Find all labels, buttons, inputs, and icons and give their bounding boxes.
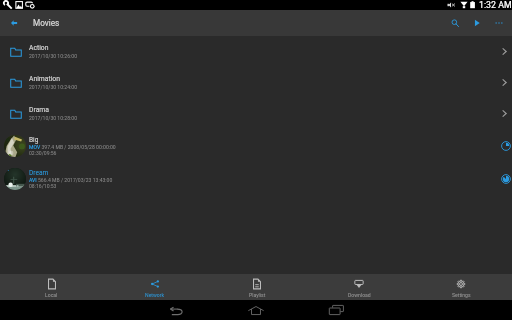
staticText: 2017/10/30 10:26:00 <box>29 53 78 59</box>
staticText: Network <box>145 292 165 298</box>
staticText: Movies <box>33 18 60 28</box>
staticText: AVI 566.4 MB / 2017/03/23 13:43:00 <box>29 177 113 183</box>
staticText: Animation <box>29 75 61 83</box>
button[interactable]: Search <box>444 10 466 36</box>
button[interactable]: More options <box>488 10 510 36</box>
button[interactable]: Animation <box>0 67 512 98</box>
staticText: 2017/10/30 10:28:00 <box>29 115 78 121</box>
staticText: Local <box>45 292 58 298</box>
button[interactable]: Home <box>236 300 276 320</box>
button[interactable]: Network <box>103 274 206 300</box>
button[interactable]: Settings <box>410 274 512 300</box>
button[interactable]: Back <box>156 301 196 320</box>
staticText: Action <box>29 44 49 52</box>
button[interactable]: Download <box>308 274 410 300</box>
staticText: MOV 397.4 MB / 2008/05/28 00:00:00 <box>29 144 116 150</box>
button[interactable]: Local <box>0 274 103 300</box>
staticText: 08:16/10:53 <box>29 183 57 189</box>
button[interactable]: Big <box>0 129 512 162</box>
staticText: Drama <box>29 106 49 114</box>
staticText: Settings <box>452 292 471 298</box>
staticText: 2017/10/30 10:24:00 <box>29 84 78 90</box>
button[interactable]: Drama <box>0 98 512 129</box>
button[interactable]: Dream <box>0 162 512 195</box>
staticText: 1:32 AM <box>479 0 512 10</box>
button[interactable]: Recents <box>316 300 356 320</box>
button[interactable]: Play <box>466 10 488 36</box>
button[interactable]: Action <box>0 36 512 67</box>
staticText: Dream <box>29 169 49 177</box>
button[interactable]: Back <box>0 10 28 36</box>
staticText: Big <box>29 136 39 144</box>
staticText: 02:30/09:56 <box>29 150 57 156</box>
staticText: Playlist <box>249 292 266 298</box>
button[interactable]: Playlist <box>206 274 308 300</box>
staticText: Download <box>348 292 371 298</box>
